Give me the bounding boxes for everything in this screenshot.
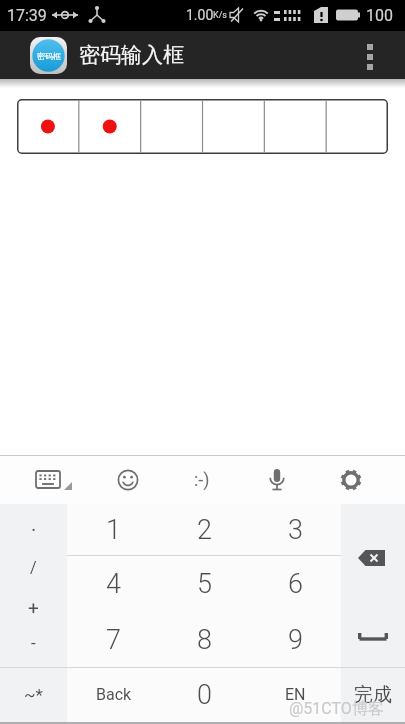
staticText: 1 [106,514,121,546]
button[interactable] [17,99,388,154]
button[interactable]: 2 [159,504,250,555]
staticText: 3 [288,514,303,546]
button[interactable]: 4 [68,556,159,611]
button[interactable]: :-) [177,459,227,499]
button[interactable] [256,460,298,500]
staticText: 2 [197,514,212,546]
button[interactable]: - [0,623,67,663]
button[interactable] [330,460,372,500]
staticText: 9 [288,624,303,656]
staticText: Back [96,685,132,704]
button[interactable]: 3 [250,504,341,555]
staticText: 密码框 [37,51,61,61]
staticText: 6 [288,568,303,600]
staticText: 1.00 [186,7,214,23]
staticText: EN [285,685,306,704]
staticText: + [28,596,39,618]
button[interactable] [28,460,74,500]
staticText: ~* [24,685,43,705]
button[interactable]: 9 [250,612,341,667]
staticText: 密码输入框 [79,42,184,68]
button[interactable]: ~* [0,667,67,722]
staticText: :-) [194,469,210,490]
button[interactable] [341,609,405,665]
staticText: 100 [366,6,393,25]
staticText: · [31,518,37,541]
button[interactable]: 5 [159,556,250,611]
button[interactable] [355,35,385,75]
button[interactable]: 7 [68,612,159,667]
button[interactable]: 8 [159,612,250,667]
staticText: 8 [197,624,212,656]
button[interactable]: 0 [159,667,250,722]
staticText: K/s [213,10,228,21]
staticText: @51CTO博客 [289,699,384,719]
staticText: 7 [106,624,121,656]
button[interactable]: 完成 [341,667,405,722]
button[interactable]: EN [250,667,341,722]
staticText: 5 [197,568,212,600]
staticText: 17:39 [7,6,47,25]
button[interactable]: 6 [250,556,341,611]
button[interactable] [107,460,149,500]
staticText: / [30,558,37,577]
button[interactable]: 1 [68,504,159,555]
button[interactable]: · [0,509,67,550]
button[interactable]: / [0,548,67,586]
staticText: 完成 [354,683,392,707]
staticText: 0 [197,679,212,711]
button[interactable]: + [0,587,67,627]
button[interactable]: Back [68,667,159,722]
button[interactable] [341,505,405,611]
staticText: - [31,633,36,653]
staticText: 4 [106,568,121,600]
